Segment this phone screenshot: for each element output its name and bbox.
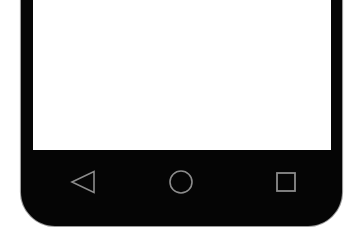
button[interactable]: Home	[158, 160, 204, 204]
button[interactable]: Recent apps	[263, 160, 309, 204]
button[interactable]: Back	[60, 160, 106, 204]
